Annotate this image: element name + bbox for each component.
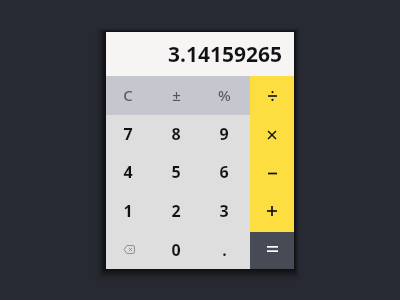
button[interactable]: %	[202, 76, 250, 115]
staticText: .	[222, 239, 227, 261]
staticText: 2	[171, 200, 181, 222]
button[interactable]: Subtract	[250, 154, 294, 193]
staticText: 4	[123, 161, 133, 183]
button[interactable]: 3	[202, 191, 250, 230]
button[interactable]: Multiply	[250, 115, 294, 154]
staticText: 1	[123, 200, 133, 222]
staticText: 0	[171, 239, 181, 261]
staticText: 7	[123, 123, 133, 145]
button[interactable]: 9	[202, 115, 250, 153]
staticText: ±	[172, 85, 181, 105]
button[interactable]: 5	[154, 153, 202, 191]
button[interactable]: 6	[202, 153, 250, 191]
button[interactable]: 2	[154, 191, 202, 230]
button[interactable]: C	[106, 76, 154, 115]
button[interactable]: .	[202, 230, 250, 269]
staticText: 9	[219, 123, 229, 145]
staticText: 6	[219, 161, 229, 183]
button[interactable]: 0	[154, 230, 202, 269]
button[interactable]: 7	[106, 115, 154, 153]
button[interactable]: Backspace	[106, 230, 154, 269]
staticText: C	[123, 85, 133, 105]
staticText: 3.14159265	[168, 40, 283, 69]
button[interactable]: 8	[154, 115, 202, 153]
staticText: 3	[219, 200, 229, 222]
button[interactable]: Divide	[250, 76, 294, 115]
button[interactable]: Add	[250, 193, 294, 232]
button[interactable]: Equals	[250, 232, 294, 269]
staticText: 8	[171, 123, 181, 145]
button[interactable]: 4	[106, 153, 154, 191]
staticText: %	[218, 85, 231, 105]
staticText: 5	[171, 161, 181, 183]
button[interactable]: 1	[106, 191, 154, 230]
button[interactable]: ±	[154, 76, 202, 115]
